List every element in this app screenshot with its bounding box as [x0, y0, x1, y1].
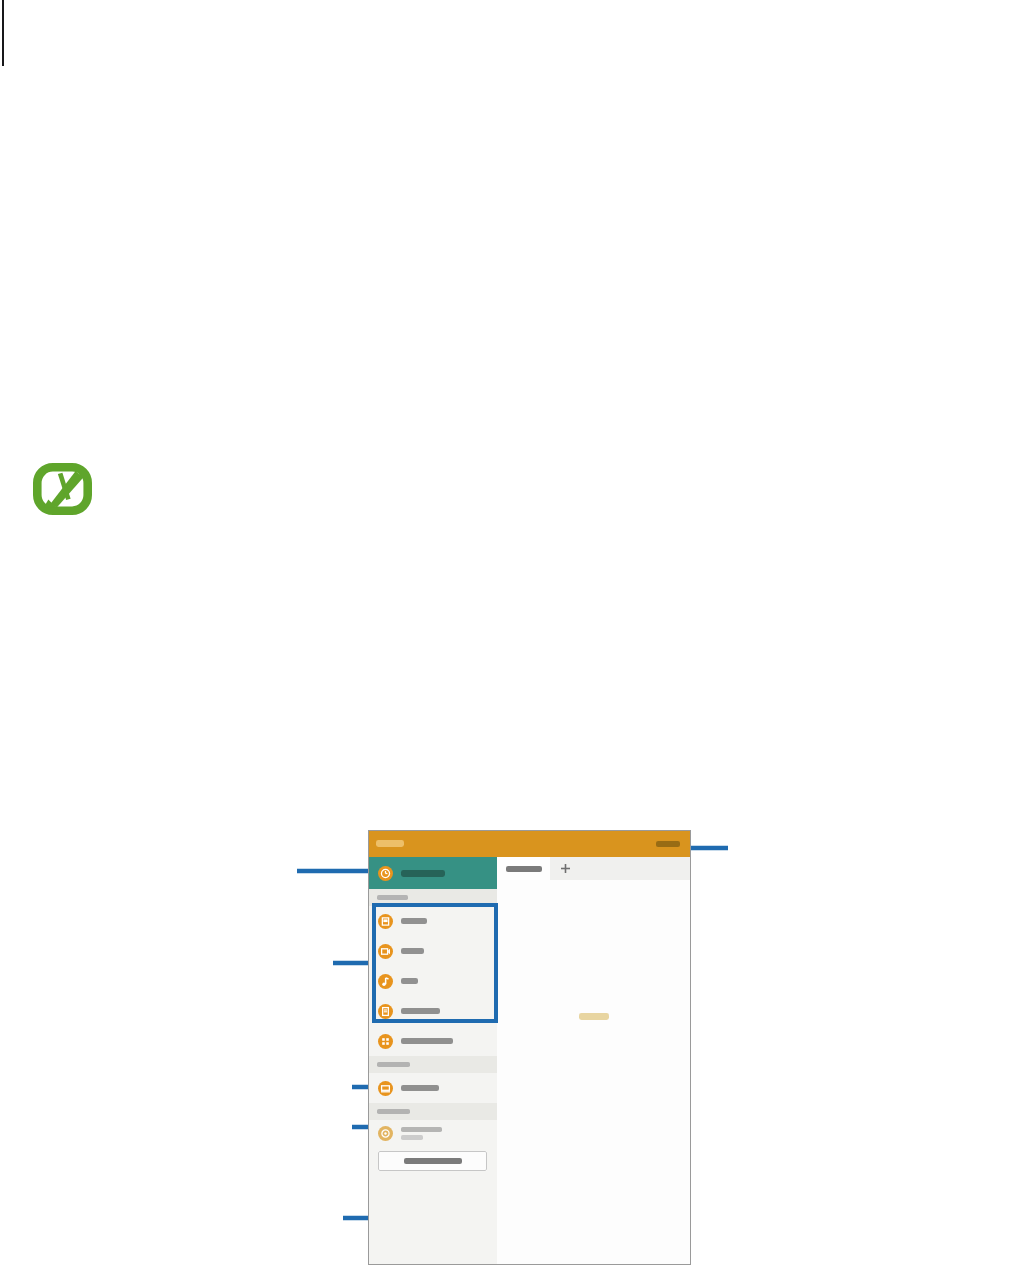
button[interactable] [368, 1120, 497, 1146]
button[interactable]: Search [653, 837, 683, 851]
button[interactable] [497, 857, 550, 880]
button[interactable] [368, 936, 497, 966]
button[interactable] [368, 1073, 497, 1103]
button[interactable] [368, 1026, 497, 1056]
button[interactable] [368, 996, 497, 1026]
button[interactable] [378, 1151, 487, 1171]
button[interactable] [368, 966, 497, 996]
button[interactable]: Add tab [550, 857, 580, 880]
button[interactable] [368, 906, 497, 936]
button[interactable] [368, 857, 497, 889]
